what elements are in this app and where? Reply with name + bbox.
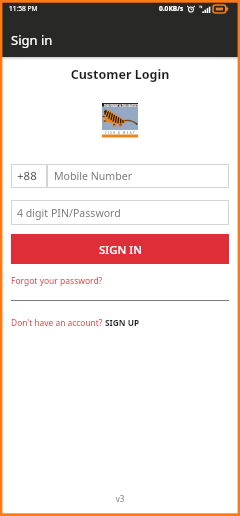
staticText: Mobile Number: [54, 169, 133, 183]
staticText: +88: [17, 168, 37, 184]
staticText: Forgot your password?: [11, 275, 103, 287]
button[interactable]: SIGN UP: [105, 317, 140, 328]
button[interactable]: +88: [11, 164, 47, 188]
button[interactable]: Forgot your password?: [11, 275, 103, 287]
staticText: Customer Login: [0, 66, 240, 83]
button[interactable]: SIGN IN: [11, 234, 229, 264]
button[interactable]: 4 digit PIN/Password: [11, 200, 229, 225]
staticText: Sign in: [11, 31, 53, 49]
staticText: SIGN IN: [99, 242, 142, 257]
staticText: THE FINEST & THE FASTEST: [104, 104, 138, 108]
other: Battery: [213, 5, 228, 13]
staticText: Don't have an account?: [11, 317, 103, 328]
staticText: F I S H & M E A T: [105, 131, 135, 135]
other: Alarm: [188, 5, 194, 13]
staticText: 0.0KB/s: [159, 4, 184, 13]
staticText: 11:58 PM: [9, 4, 38, 13]
staticText: 4 digit PIN/Password: [17, 206, 121, 220]
staticText: v3: [0, 493, 240, 504]
staticText: SIGN UP: [105, 317, 140, 328]
other: Signal: [199, 5, 209, 13]
button[interactable]: Mobile Number: [47, 164, 229, 188]
